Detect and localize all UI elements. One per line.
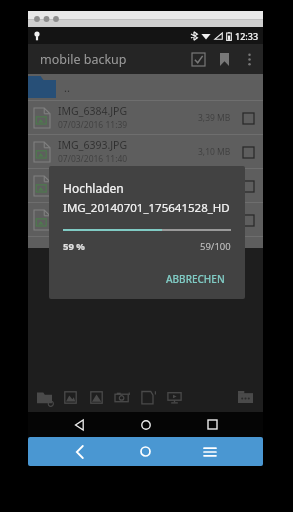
staticText: 07/03/2016 11:41 xyxy=(58,187,128,199)
button[interactable]: Select IMG_6393.JPG xyxy=(239,143,257,161)
staticText: 07/03/2016 11:39 xyxy=(58,119,128,131)
button[interactable]: Screen xyxy=(161,384,187,410)
staticText: 07/03/2016 11:40 xyxy=(58,153,128,165)
staticText: Hochladen xyxy=(63,180,124,196)
button[interactable]: Back xyxy=(65,412,95,437)
button[interactable]: IMG_6384.JPG xyxy=(28,101,263,134)
button[interactable]: Home xyxy=(131,412,161,437)
button[interactable]: ABBRECHEN xyxy=(160,267,231,291)
staticText: IMG_6384.JPG xyxy=(58,104,128,118)
button[interactable]: IMG_6417.JPG xyxy=(28,203,263,236)
staticText: 59/100 xyxy=(200,240,231,253)
button[interactable]: Select IMG_6401.JPG xyxy=(239,177,257,195)
staticText: 3,10 MB xyxy=(198,146,231,158)
button[interactable]: Menu xyxy=(195,437,225,466)
staticText: ABBRECHEN xyxy=(166,272,225,286)
button[interactable]: Recent apps xyxy=(197,412,227,437)
staticText: mobile backup xyxy=(40,51,185,68)
staticText: 12:33 xyxy=(235,30,259,42)
button[interactable]: New folder xyxy=(31,384,57,410)
staticText: .. xyxy=(64,80,70,95)
button[interactable]: IMG_6401.JPG xyxy=(28,169,263,202)
staticText: IMG_6401.JPG xyxy=(58,172,128,186)
button[interactable]: Back xyxy=(65,437,95,466)
button[interactable]: More folders xyxy=(232,384,258,410)
staticText: 3,39 MB xyxy=(198,112,231,124)
button[interactable]: Bookmarks xyxy=(211,46,237,72)
staticText: IMG_6393.JPG xyxy=(58,138,128,152)
button[interactable]: Image xyxy=(83,384,109,410)
button[interactable]: New file xyxy=(135,384,161,410)
button[interactable]: Select all xyxy=(185,46,211,72)
staticText: 07/03/2016 11:43 xyxy=(58,221,128,233)
button[interactable]: Gallery xyxy=(57,384,83,410)
staticText: IMG_20140701_175641528_HDR.jpg xyxy=(63,200,231,216)
button[interactable]: IMG_6393.JPG xyxy=(28,135,263,168)
button[interactable]: More options xyxy=(237,47,261,71)
button[interactable]: Select IMG_6384.JPG xyxy=(239,109,257,127)
staticText: 59 % xyxy=(63,240,85,253)
staticText: IMG_6417.JPG xyxy=(58,206,128,220)
button[interactable]: .. xyxy=(28,74,263,100)
button[interactable]: Home xyxy=(130,437,160,466)
button[interactable]: Select IMG_6417.JPG xyxy=(239,211,257,229)
button[interactable]: Camera xyxy=(109,384,135,410)
